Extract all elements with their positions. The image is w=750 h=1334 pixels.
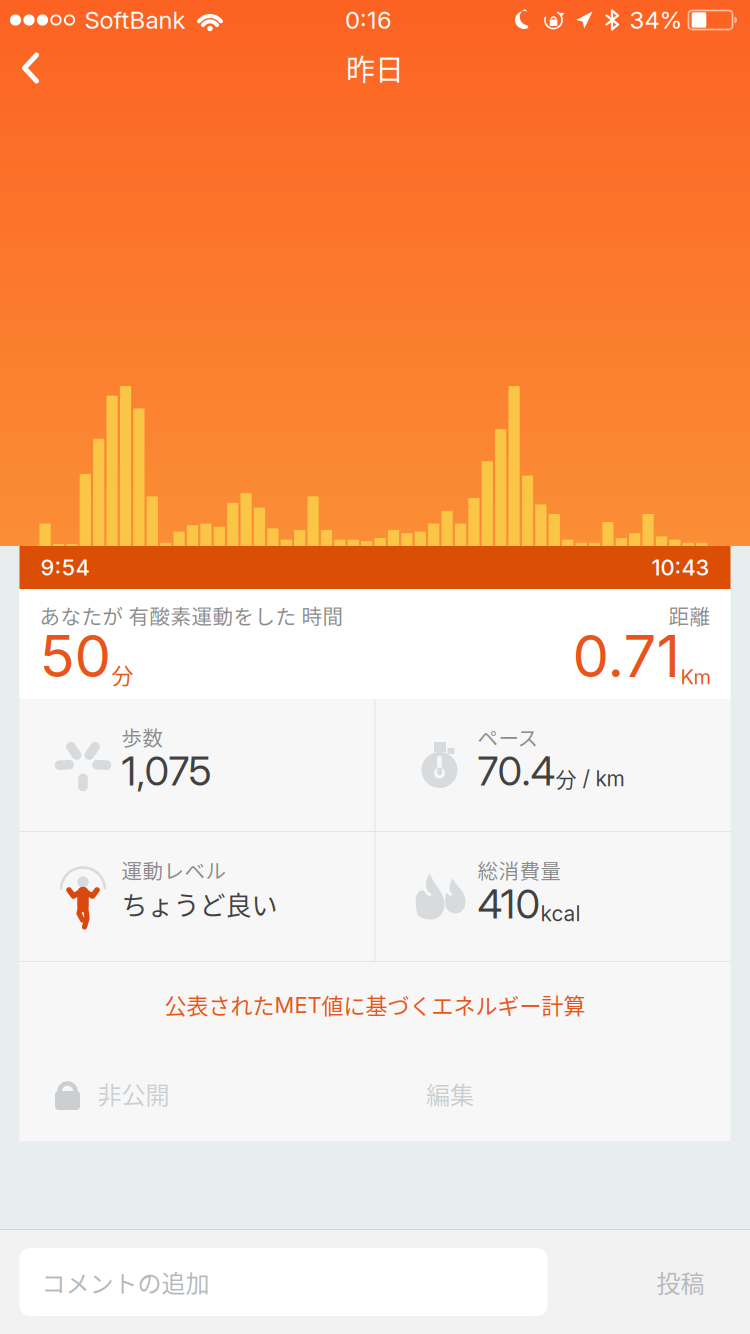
staticText: 昨日 xyxy=(346,47,404,89)
staticText: 運動レベル xyxy=(121,855,226,885)
button[interactable]: 投稿 xyxy=(610,1248,750,1316)
staticText: 9:54 xyxy=(40,554,89,581)
staticText: 公表されたMET値に基づくエネルギー計算 xyxy=(164,989,585,1020)
staticText: 1,075 xyxy=(121,747,211,795)
staticText: 0:16 xyxy=(345,5,392,34)
staticText: 総消費量 xyxy=(477,855,561,885)
staticText: あなたが 有酸素運動をした 時間 xyxy=(39,601,343,630)
staticText: 10:43 xyxy=(651,554,709,581)
button[interactable]: Back xyxy=(0,40,61,96)
staticText: 70.4 xyxy=(477,747,555,795)
staticText: 投稿 xyxy=(656,1265,704,1299)
button[interactable]: コメントの追加 xyxy=(19,1248,547,1316)
staticText: 50 xyxy=(39,621,111,691)
staticText: 410 xyxy=(477,880,540,928)
staticText: 0.71 xyxy=(572,621,680,691)
staticText: コメントの追加 xyxy=(41,1265,209,1299)
button[interactable]: 編集 xyxy=(390,1046,510,1140)
staticText: kcal xyxy=(540,901,580,926)
button[interactable]: 非公開 xyxy=(19,1046,169,1140)
staticText: 歩数 xyxy=(121,722,163,752)
staticText: 距離 xyxy=(668,601,710,630)
staticText: 非公開 xyxy=(97,1076,169,1111)
staticText: Km xyxy=(680,665,710,689)
staticText: ペース xyxy=(477,722,538,752)
staticText: SoftBank xyxy=(84,5,185,34)
staticText: ちょうど良い xyxy=(121,885,277,923)
staticText: 34% xyxy=(629,5,682,34)
staticText: 分 / km xyxy=(555,763,624,793)
staticText: 分 xyxy=(111,658,133,690)
staticText: 編集 xyxy=(426,1076,474,1111)
button[interactable]: 公表されたMET値に基づくエネルギー計算 xyxy=(20,962,730,1046)
